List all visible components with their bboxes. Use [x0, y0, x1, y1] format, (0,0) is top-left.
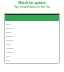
- staticText: Tea: [6, 54, 10, 57]
- button[interactable]: Apples: [4, 37, 60, 41]
- button[interactable]: Sugar: [4, 49, 60, 53]
- staticText: Eggs: [6, 30, 12, 33]
- button[interactable]: Milk: [4, 21, 60, 25]
- button[interactable]: Salt: [4, 57, 60, 61]
- staticText: Salt: [6, 58, 11, 61]
- button[interactable]: Coffee: [4, 45, 60, 49]
- staticText: Watch for update: [0, 1, 64, 5]
- button[interactable]: Tea: [4, 53, 60, 57]
- button[interactable]: Eggs: [4, 29, 60, 33]
- staticText: Butter: [6, 34, 14, 37]
- staticText: Tap to add items in the list: [0, 5, 64, 9]
- staticText: Apples: [6, 38, 14, 41]
- staticText: Milk: [6, 22, 11, 25]
- staticText: List: [6, 17, 10, 20]
- button[interactable]: Bread: [4, 25, 60, 29]
- staticText: Coffee: [6, 46, 14, 49]
- staticText: Sugar: [6, 50, 13, 53]
- button[interactable]: Rice: [4, 41, 60, 45]
- staticText: Bread: [6, 26, 13, 29]
- button[interactable]: Butter: [4, 33, 60, 37]
- staticText: Rice: [6, 42, 11, 45]
